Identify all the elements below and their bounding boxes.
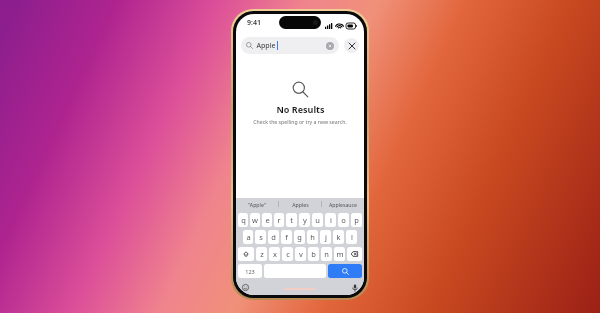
staticText: a	[246, 232, 251, 242]
button[interactable]: 123	[238, 264, 262, 278]
staticText: b	[311, 249, 316, 259]
button[interactable]: y	[299, 213, 310, 227]
button[interactable]: w	[250, 213, 260, 227]
button[interactable]: q	[238, 213, 248, 227]
staticText: 123	[245, 268, 255, 275]
button[interactable]: Dictation	[350, 283, 359, 292]
staticText: h	[310, 232, 315, 242]
button[interactable]: r	[274, 213, 284, 227]
staticText: d	[271, 232, 276, 242]
button[interactable]: h	[307, 230, 318, 244]
button[interactable]: z	[256, 247, 267, 261]
button[interactable]: u	[312, 213, 323, 227]
button[interactable]: l	[346, 230, 357, 244]
button[interactable]: v	[295, 247, 306, 261]
button[interactable]: Backspace	[347, 247, 362, 261]
staticText: 9:41	[247, 18, 261, 28]
button[interactable]: c	[282, 247, 293, 261]
staticText: i	[330, 215, 332, 225]
button[interactable]: Apples	[279, 198, 321, 210]
staticText: e	[265, 215, 270, 225]
staticText: o	[341, 215, 346, 225]
button[interactable]: d	[268, 230, 279, 244]
button[interactable]: p	[351, 213, 362, 227]
button[interactable]: Search	[328, 264, 362, 278]
button[interactable]: x	[269, 247, 280, 261]
button[interactable]: Emoji	[241, 283, 250, 292]
button[interactable]: g	[294, 230, 305, 244]
staticText: Apple	[256, 41, 276, 51]
staticText: z	[260, 249, 264, 259]
staticText: r	[277, 215, 281, 225]
staticText: Applesauce	[329, 201, 357, 208]
staticText: n	[324, 249, 329, 259]
staticText: No Results	[276, 103, 325, 115]
staticText: u	[315, 215, 320, 225]
button[interactable]: e	[262, 213, 272, 227]
staticText: t	[290, 215, 293, 225]
button[interactable]: o	[338, 213, 349, 227]
staticText: p	[354, 215, 359, 225]
staticText: l	[351, 232, 353, 242]
button[interactable]: b	[308, 247, 319, 261]
staticText: j	[325, 232, 327, 242]
button[interactable]: t	[286, 213, 297, 227]
button[interactable]: m	[334, 247, 345, 261]
button[interactable]: a	[243, 230, 253, 244]
staticText: q	[241, 215, 246, 225]
staticText: v	[299, 249, 303, 259]
staticText: m	[336, 249, 344, 259]
staticText: c	[286, 249, 290, 259]
staticText: Check the spelling or try a new search.	[253, 118, 347, 125]
button[interactable]: j	[320, 230, 331, 244]
button[interactable]: Apple	[241, 37, 339, 54]
staticText: k	[336, 232, 341, 242]
button[interactable]: i	[325, 213, 336, 227]
button[interactable]: s	[255, 230, 266, 244]
staticText: f	[285, 232, 288, 242]
button[interactable]: "Apple"	[236, 198, 278, 210]
button[interactable]: Clear text	[326, 42, 334, 50]
staticText: s	[259, 232, 263, 242]
staticText: "Apple"	[248, 201, 266, 208]
staticText: y	[303, 215, 307, 225]
button[interactable]: Shift	[238, 247, 254, 261]
staticText: g	[297, 232, 302, 242]
button[interactable]: f	[281, 230, 292, 244]
button[interactable]: n	[321, 247, 332, 261]
button[interactable]: Applesauce	[322, 198, 364, 210]
staticText: Apples	[292, 201, 309, 208]
button[interactable]: k	[333, 230, 344, 244]
staticText: x	[273, 249, 277, 259]
staticText: w	[252, 215, 258, 225]
button[interactable]: Close search	[344, 38, 359, 53]
